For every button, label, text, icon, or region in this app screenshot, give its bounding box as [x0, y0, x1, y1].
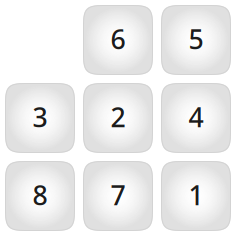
button[interactable]: Tile 3 — [5, 83, 75, 153]
button[interactable]: Tile 4 — [161, 83, 231, 153]
staticText: 3 — [32, 99, 47, 135]
button[interactable]: Tile 7 — [83, 161, 153, 231]
button[interactable]: Tile 5 — [161, 5, 231, 75]
staticText: 4 — [188, 99, 203, 135]
staticText: 1 — [188, 177, 203, 213]
staticText: 5 — [188, 21, 203, 57]
staticText: 2 — [110, 99, 125, 135]
staticText: 6 — [110, 21, 125, 57]
button[interactable]: Tile 6 — [83, 5, 153, 75]
staticText: 8 — [32, 177, 47, 213]
button[interactable]: Tile 1 — [161, 161, 231, 231]
button[interactable]: Tile 2 — [83, 83, 153, 153]
staticText: 7 — [110, 177, 125, 213]
button[interactable]: Tile 8 — [5, 161, 75, 231]
